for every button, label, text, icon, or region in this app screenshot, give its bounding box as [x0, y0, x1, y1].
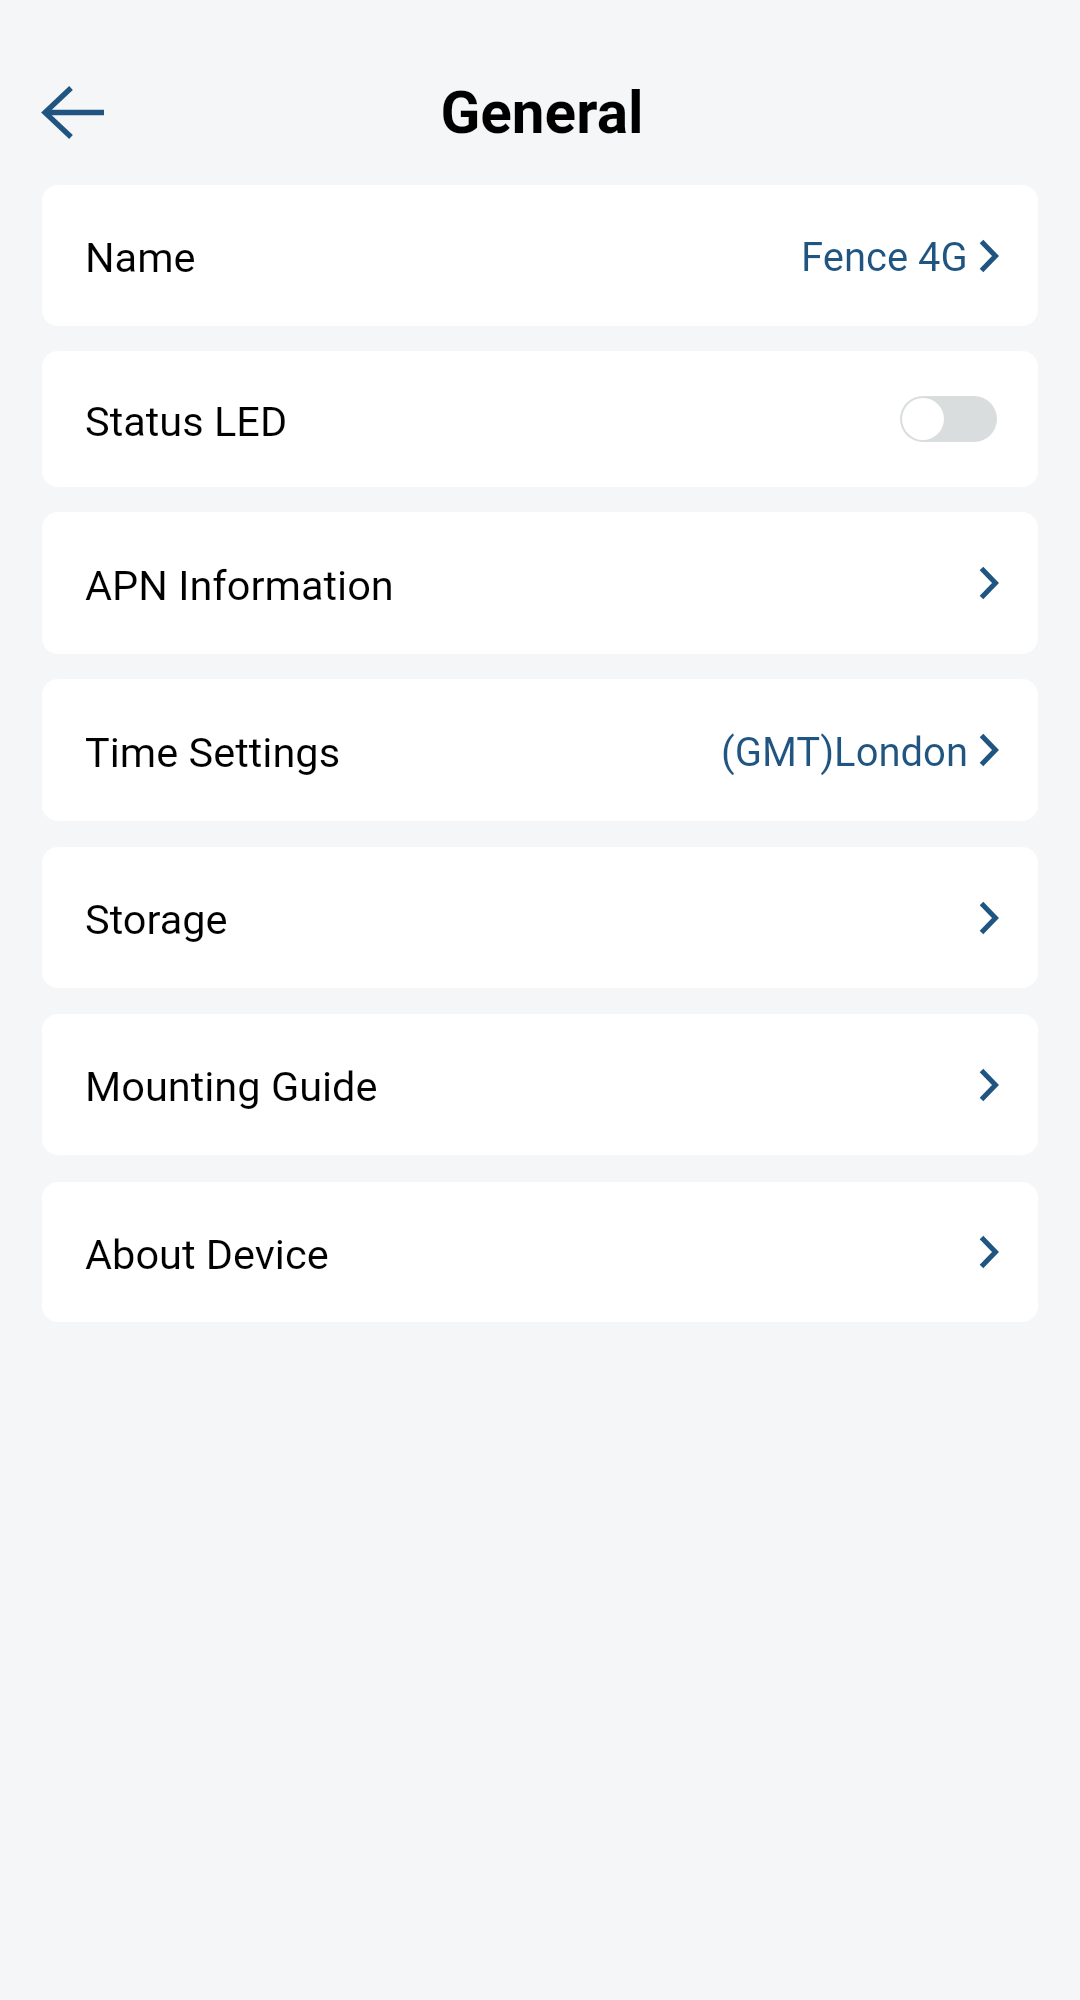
staticText: About Device [85, 1230, 329, 1279]
button[interactable]: APN Information [42, 512, 1038, 654]
staticText: Time Settings [85, 728, 341, 777]
staticText: Fence 4G [801, 234, 968, 281]
staticText: General [440, 79, 644, 148]
button[interactable]: Back [23, 62, 123, 162]
button[interactable]: About Device [42, 1182, 1038, 1322]
button[interactable]: Status LED switch [900, 396, 997, 442]
button[interactable]: Time Settings [42, 679, 1038, 821]
staticText: (GMT)London [721, 729, 968, 776]
button[interactable]: Status LED [42, 351, 1038, 487]
staticText: Storage [85, 895, 228, 944]
staticText: Name [85, 233, 196, 282]
staticText: Status LED [85, 397, 288, 446]
button[interactable]: Storage [42, 847, 1038, 988]
button[interactable]: Name [42, 185, 1038, 326]
staticText: APN Information [85, 561, 394, 610]
staticText: Mounting Guide [85, 1062, 378, 1111]
button[interactable]: Mounting Guide [42, 1014, 1038, 1155]
